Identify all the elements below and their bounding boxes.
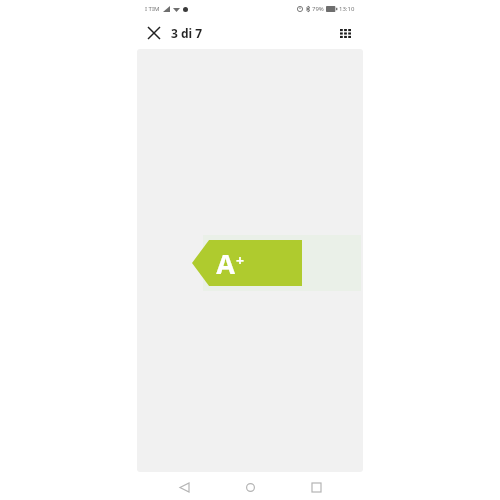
staticText: + <box>236 251 245 270</box>
button[interactable]: Home <box>233 474 267 500</box>
button[interactable]: Recent apps <box>299 474 333 500</box>
staticText: 13:10 <box>339 5 355 13</box>
staticText: I TIM <box>145 5 160 13</box>
button[interactable]: Back <box>167 474 201 500</box>
button[interactable]: Close <box>141 20 167 46</box>
staticText: A <box>216 245 235 282</box>
staticText: 79% <box>312 5 324 13</box>
button[interactable]: Grid view <box>333 21 357 45</box>
staticText: 3 di 7 <box>171 25 203 41</box>
